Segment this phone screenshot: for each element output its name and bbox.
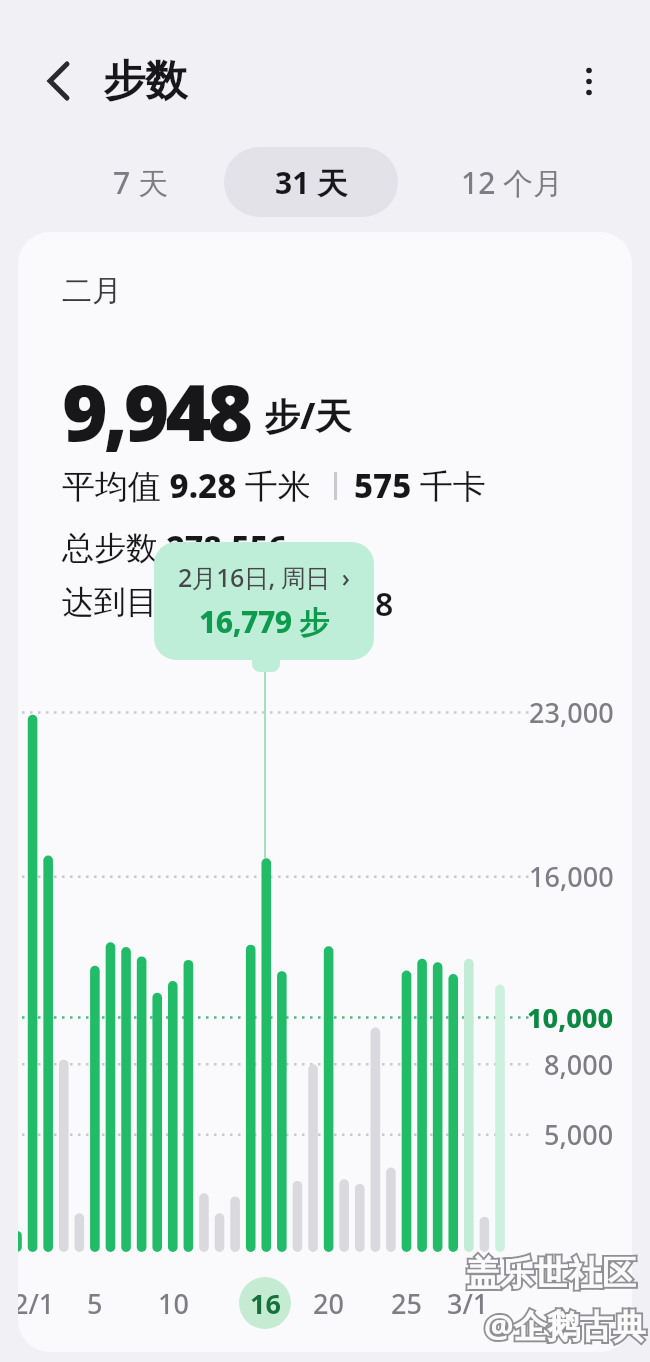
button[interactable]: 31 天	[224, 147, 398, 217]
staticText: 5	[87, 1285, 103, 1321]
staticText: 达到目标	[62, 582, 190, 622]
button[interactable]: 12 个月	[445, 147, 580, 217]
staticText: @企鹅古典	[484, 1303, 646, 1348]
staticText: 31 天	[275, 162, 348, 203]
staticText: 20	[313, 1285, 344, 1321]
staticText: @企鹅古典	[484, 1303, 646, 1348]
button[interactable]	[34, 56, 84, 106]
staticText: 步数	[103, 55, 187, 108]
staticText: 25	[391, 1285, 422, 1321]
staticText: 5,000	[544, 1116, 614, 1152]
staticText: 盖乐世社区	[466, 1252, 636, 1295]
staticText: 步/天	[264, 391, 352, 440]
button[interactable]	[564, 56, 614, 106]
staticText: 12 个月	[461, 162, 564, 203]
button[interactable]: 16	[239, 1277, 291, 1329]
staticText: 10	[158, 1285, 189, 1321]
staticText: 二月	[62, 272, 122, 310]
staticText: 16,000	[529, 858, 614, 894]
staticText: 575 千卡	[354, 463, 486, 508]
staticText: 9,948	[62, 358, 249, 464]
staticText: 7 天	[113, 162, 168, 203]
staticText: 2月16日, 周日 ›	[178, 560, 350, 594]
staticText: 16,779 步	[199, 601, 329, 642]
staticText: 总步数 278,556	[62, 525, 287, 569]
staticText: 盖乐世社区	[466, 1252, 636, 1295]
staticText: 2/1	[18, 1285, 55, 1321]
staticText: 8	[375, 582, 394, 626]
staticText: 23,000	[529, 694, 614, 730]
staticText: 10,000	[527, 999, 614, 1035]
button[interactable]: 7 天	[80, 147, 200, 217]
staticText: 16	[250, 1285, 281, 1322]
button[interactable]: 2月16日, 周日 ›	[154, 542, 374, 660]
staticText: 8,000	[544, 1046, 614, 1082]
staticText: 3/1	[447, 1285, 489, 1321]
staticText: 平均值 9.28 千米	[62, 463, 311, 508]
